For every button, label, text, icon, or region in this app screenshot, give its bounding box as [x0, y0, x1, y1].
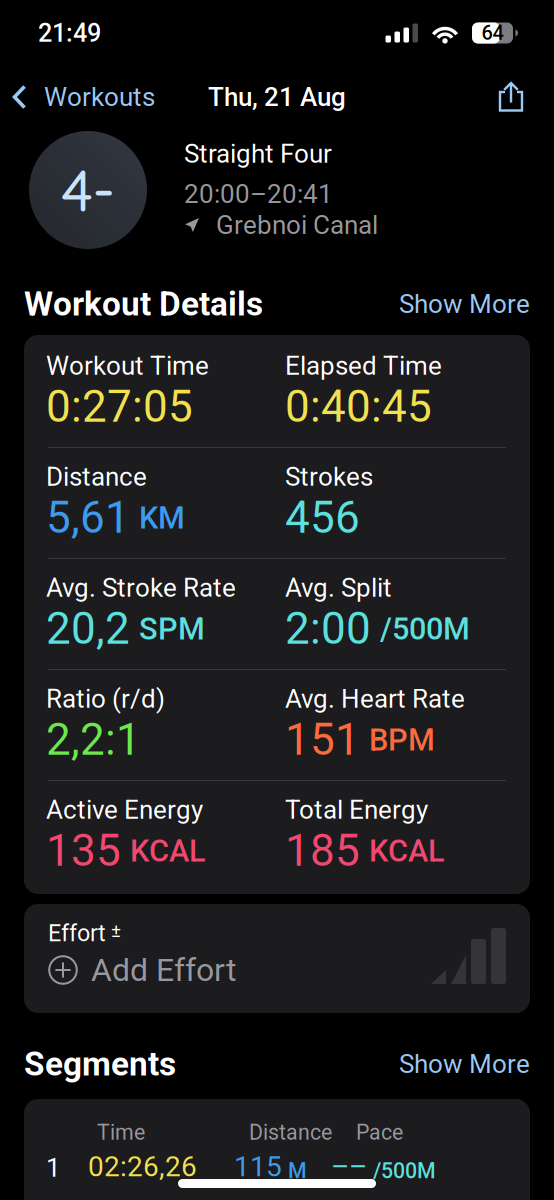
staticText: 2,2:1 [46, 714, 141, 766]
staticText: 151 [285, 714, 360, 766]
staticText: Show More [399, 289, 530, 319]
staticText: BPM [369, 722, 435, 758]
staticText: Total Energy [285, 794, 428, 825]
staticText: Show More [399, 1049, 530, 1079]
staticText: Add Effort [91, 951, 236, 989]
staticText: Distance [249, 1120, 332, 1145]
staticText: Segments [24, 1044, 176, 1084]
staticText: 64 [481, 21, 503, 45]
staticText: 456 [285, 492, 360, 544]
staticText: 135 [46, 825, 121, 877]
staticText: Active Energy [46, 794, 203, 825]
staticText: KCAL [130, 833, 206, 869]
staticText: 02:26,26 [88, 1150, 197, 1183]
button[interactable]: Show More [399, 1049, 530, 1079]
staticText: 21:49 [38, 18, 101, 48]
staticText: /500M [380, 611, 470, 647]
staticText: Elapsed Time [285, 350, 442, 381]
staticText: KCAL [369, 833, 445, 869]
staticText: Avg. Split [285, 572, 392, 603]
staticText: KM [139, 500, 185, 536]
staticText: Ratio (r/d) [46, 683, 165, 714]
staticText: 5,61 [46, 492, 130, 544]
staticText: Avg. Heart Rate [285, 683, 465, 714]
staticText: Pace [356, 1120, 403, 1145]
staticText: Strokes [285, 461, 373, 492]
button[interactable]: Show More [399, 289, 530, 319]
staticText: Grebnoi Canal [216, 210, 378, 240]
staticText: 2:00 [285, 603, 371, 655]
staticText: 20:00–20:41 [184, 179, 333, 209]
staticText: Straight Four [184, 138, 332, 169]
button[interactable]: Workouts [0, 70, 167, 124]
staticText: Workout Time [46, 350, 209, 381]
staticText: /500M [373, 1158, 436, 1183]
staticText: –– [331, 1150, 367, 1183]
button[interactable]: Share [482, 70, 554, 124]
staticText: ± [111, 920, 121, 942]
staticText: Distance [46, 461, 147, 492]
staticText: 185 [285, 825, 360, 877]
button[interactable]: Effort [0, 904, 554, 1013]
staticText: 1 [46, 1152, 61, 1183]
staticText: 4- [61, 154, 114, 226]
staticText: Avg. Stroke Rate [46, 572, 236, 603]
staticText: 0:40:45 [285, 381, 432, 433]
staticText: 0:27:05 [46, 381, 193, 433]
staticText: M [288, 1158, 307, 1183]
staticText: Effort [48, 920, 106, 947]
staticText: Workout Details [24, 284, 263, 324]
staticText: Time [97, 1120, 145, 1145]
staticText: 20,2 [46, 603, 130, 655]
staticText: SPM [139, 611, 205, 647]
staticText: Workouts [44, 82, 155, 112]
staticText: Thu, 21 Aug [208, 82, 346, 112]
staticText: 115 [234, 1150, 282, 1183]
